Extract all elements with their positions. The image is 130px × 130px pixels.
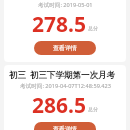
staticText: 查看详情 [53,44,77,52]
staticText: 总分 [88,25,98,31]
staticText: 286.5 [32,91,86,120]
button[interactable]: 查看详情 [34,122,96,130]
button[interactable]: 初三 [4,0,126,62]
staticText: 初三下学期第一次月考 [30,70,115,81]
staticText: 初三 [9,70,26,81]
staticText: 查看详情 [53,125,77,130]
button[interactable]: 查看详情 [34,41,96,55]
staticText: 278.5 [32,10,86,39]
staticText: 总分 [88,106,98,112]
button[interactable]: 初三 [4,65,126,130]
staticText: 考试时间: 2019-05-01 [38,1,93,9]
staticText: 考试时间: 2019-04-07T12:48:59.423 [20,82,111,90]
